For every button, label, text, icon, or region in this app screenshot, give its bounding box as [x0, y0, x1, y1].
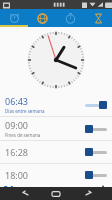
button[interactable]: Alarm off: [85, 169, 107, 181]
button[interactable]: Alarm off: [85, 123, 107, 135]
button[interactable]: Back: [18, 187, 32, 200]
button[interactable]: Alarm: [0, 9, 28, 27]
button[interactable]: Alarm on: [85, 99, 107, 111]
button[interactable]: Home: [49, 187, 63, 200]
button[interactable]: 06:43: [0, 93, 112, 116]
staticText: Fines de semana: [5, 132, 41, 138]
button[interactable]: 16:28: [0, 141, 112, 163]
button[interactable]: Add alarm: [4, 186, 13, 187]
button[interactable]: Stopwatch: [56, 9, 84, 27]
button[interactable]: 09:00: [0, 117, 112, 140]
button[interactable]: World clock: [28, 9, 56, 27]
button[interactable]: Alarm off: [85, 146, 107, 158]
button[interactable]: 18:00: [0, 164, 112, 186]
button[interactable]: Timer: [84, 9, 112, 27]
button[interactable]: More options: [98, 186, 108, 187]
staticText: 09:00: [5, 119, 29, 131]
staticText: 16:28: [5, 146, 29, 158]
staticText: 18:00: [5, 169, 29, 181]
button[interactable]: Recents: [81, 187, 95, 200]
staticText: Días entre semana: [5, 108, 45, 114]
staticText: 06:43: [5, 95, 29, 107]
